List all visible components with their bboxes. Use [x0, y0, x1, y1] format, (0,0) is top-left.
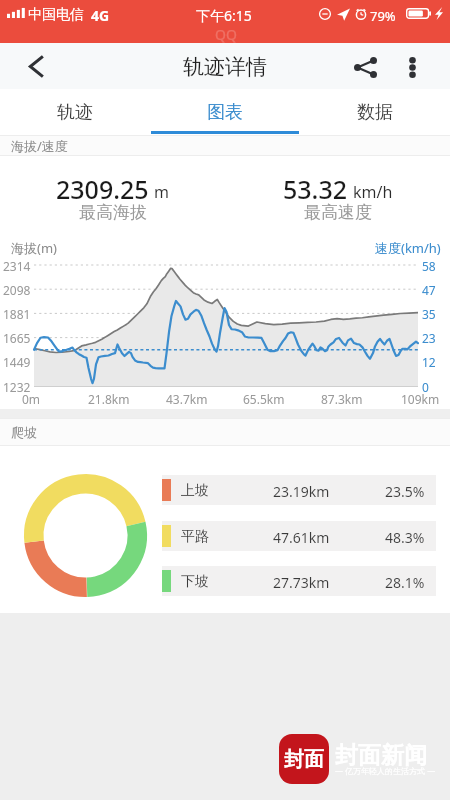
- staticText: 海拔(m): [11, 239, 57, 257]
- staticText: 12: [422, 354, 436, 370]
- staticText: 下午6:15: [196, 6, 252, 25]
- button[interactable]: Share: [343, 43, 387, 89]
- staticText: 35: [422, 306, 436, 322]
- staticText: 27.73km: [273, 573, 330, 592]
- staticText: 65.5km: [243, 391, 285, 407]
- staticText: 58: [422, 258, 436, 274]
- staticText: 封面: [284, 747, 324, 772]
- staticText: 平路: [181, 528, 209, 546]
- staticText: 87.3km: [321, 391, 363, 407]
- staticText: 2309.25: [56, 172, 149, 206]
- button[interactable]: 轨迹: [0, 89, 150, 135]
- staticText: 79%: [370, 7, 396, 25]
- staticText: 2314: [3, 258, 31, 274]
- staticText: 最高海拔: [79, 202, 147, 223]
- staticText: 47: [422, 282, 436, 298]
- button[interactable]: 数据: [300, 89, 450, 135]
- staticText: km/h: [353, 181, 393, 203]
- staticText: 数据: [357, 101, 393, 124]
- staticText: — 亿万年轻人的生活方式 —: [335, 765, 436, 776]
- staticText: 28.1%: [385, 573, 425, 592]
- staticText: 轨迹: [57, 101, 93, 124]
- staticText: 封面新闻: [335, 741, 427, 770]
- staticText: 1881: [3, 306, 31, 322]
- staticText: 轨迹详情: [183, 54, 267, 80]
- staticText: 47.61km: [273, 528, 330, 547]
- staticText: 中国电信: [28, 6, 84, 24]
- staticText: 0m: [22, 391, 41, 407]
- staticText: 爬坡: [11, 424, 37, 440]
- staticText: 2098: [3, 282, 31, 298]
- staticText: 1232: [3, 379, 31, 395]
- staticText: 上坡: [181, 482, 209, 500]
- button[interactable]: 上坡: [162, 475, 436, 505]
- staticText: QQ: [215, 25, 237, 44]
- staticText: 23.5%: [385, 482, 425, 501]
- staticText: 109km: [401, 391, 440, 407]
- button[interactable]: Back: [15, 43, 59, 89]
- staticText: 海拔/速度: [11, 137, 68, 155]
- staticText: 43.7km: [166, 391, 208, 407]
- button[interactable]: 图表: [150, 89, 300, 135]
- staticText: 1449: [3, 354, 31, 370]
- button[interactable]: 下坡: [162, 566, 436, 596]
- staticText: m: [154, 181, 169, 203]
- button[interactable]: 平路: [162, 521, 436, 551]
- staticText: 23: [422, 330, 436, 346]
- staticText: 48.3%: [385, 528, 425, 547]
- button[interactable]: More options: [390, 43, 434, 89]
- staticText: 速度(km/h): [375, 239, 441, 257]
- staticText: 下坡: [181, 573, 209, 591]
- staticText: 最高速度: [304, 202, 372, 223]
- staticText: 21.8km: [88, 391, 130, 407]
- staticText: 53.32: [283, 172, 348, 206]
- staticText: 0: [422, 379, 429, 395]
- staticText: 图表: [207, 101, 243, 124]
- staticText: 4G: [91, 6, 110, 25]
- staticText: 1665: [3, 330, 31, 346]
- staticText: 23.19km: [273, 482, 330, 501]
